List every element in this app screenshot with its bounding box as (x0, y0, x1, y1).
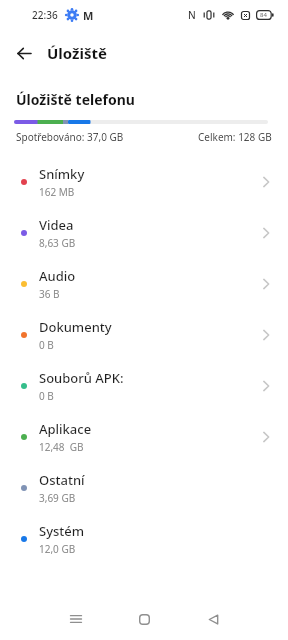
staticText: Celkem: 128 GB (198, 130, 272, 144)
staticText: Dokumenty (39, 318, 112, 336)
staticText: 12,48 GB (39, 440, 84, 454)
staticText: 0 B (39, 338, 54, 352)
staticText: 84 (260, 11, 267, 19)
staticText: 3,69 GB (39, 491, 76, 505)
button[interactable] (17, 46, 32, 61)
staticText: M (83, 8, 94, 23)
button[interactable]: Souborů APK: (0, 360, 288, 411)
button[interactable]: Dokumenty (0, 309, 288, 360)
button[interactable]: Snímky (0, 156, 288, 207)
button[interactable]: Aplikace (0, 411, 288, 462)
staticText: Snímky (39, 165, 85, 183)
staticText: Souborů APK: (39, 369, 124, 387)
staticText: Systém (39, 522, 85, 540)
staticText: Úložiště (47, 43, 107, 63)
staticText: 162 MB (39, 185, 75, 199)
staticText: N (188, 8, 196, 22)
staticText: Aplikace (39, 420, 92, 438)
staticText: 36 B (39, 287, 60, 301)
staticText: Ostatní (39, 471, 85, 489)
staticText: 8,63 GB (39, 236, 76, 250)
staticText: Spotřebováno: 37,0 GB (16, 130, 124, 144)
button[interactable]: Audio (0, 258, 288, 309)
button[interactable]: Systém (0, 513, 288, 564)
button[interactable]: Úložiště (0, 30, 288, 76)
button[interactable] (41, 598, 110, 640)
staticText: 12,0 GB (39, 542, 76, 556)
staticText: Videa (39, 216, 74, 234)
staticText: Úložiště telefonu (16, 90, 135, 109)
staticText: 22:36 (32, 8, 58, 22)
staticText: Audio (39, 267, 76, 285)
button[interactable]: Videa (0, 207, 288, 258)
button[interactable]: Ostatní (0, 462, 288, 513)
staticText: 0 B (39, 389, 54, 403)
button[interactable] (110, 598, 179, 640)
button[interactable] (179, 598, 248, 640)
